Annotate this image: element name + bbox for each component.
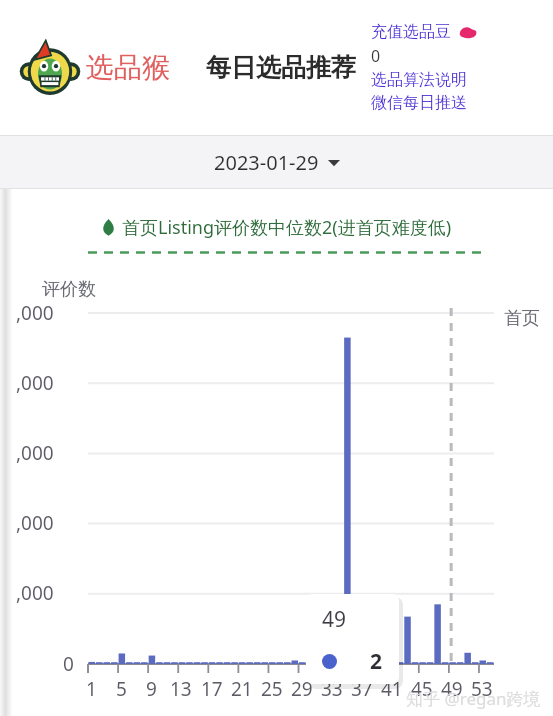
staticText: 29 [291, 676, 313, 702]
staticText: 0 [371, 45, 381, 67]
staticText: 9 [146, 676, 157, 702]
staticText: 45 [411, 676, 433, 702]
staticText: 1 [86, 676, 97, 702]
staticText: 49 [322, 605, 347, 634]
other: 选品豆 [459, 26, 477, 39]
button[interactable]: 选品算法说明 [371, 70, 467, 90]
staticText: 49 [441, 676, 463, 702]
staticText: ,000 [16, 440, 54, 466]
staticText: 17 [201, 676, 223, 702]
staticText: 13 [170, 676, 192, 702]
staticText: 2023-01-29 [214, 149, 319, 176]
staticText: 每日选品推荐 [206, 52, 356, 83]
staticText: 5 [116, 676, 127, 702]
staticText: 微信每日推送 [371, 93, 467, 113]
staticText: 首页 [504, 307, 540, 330]
staticText: 2 [370, 647, 383, 676]
button[interactable]: 充值选品豆 [371, 22, 477, 42]
staticText: 41 [381, 676, 403, 702]
staticText: ,000 [16, 580, 54, 606]
staticText: 评价数 [42, 278, 96, 301]
button[interactable]: 2023-01-29 [0, 136, 553, 188]
staticText: ,000 [16, 510, 54, 536]
staticText: 53 [471, 676, 493, 702]
staticText: 选品算法说明 [371, 70, 467, 90]
staticText: 0 [63, 651, 74, 677]
staticText: 选品猴 [86, 50, 170, 85]
staticText: 知乎 @regan跨境 [406, 687, 541, 710]
button[interactable]: 微信每日推送 [371, 93, 467, 113]
staticText: 37 [351, 676, 373, 702]
staticText: ,000 [16, 300, 54, 326]
staticText: 21 [231, 676, 253, 702]
staticText: 首页Listing评价数中位数2(进首页难度低) [122, 215, 452, 240]
staticText: ,000 [16, 370, 54, 396]
staticText: 充值选品豆 [371, 22, 451, 42]
other: 选品猴 logo [20, 38, 80, 98]
staticText: 25 [261, 676, 283, 702]
button[interactable]: 49 [306, 594, 399, 684]
staticText: 33 [321, 676, 343, 702]
button[interactable]: 选品猴 logo [0, 0, 205, 135]
